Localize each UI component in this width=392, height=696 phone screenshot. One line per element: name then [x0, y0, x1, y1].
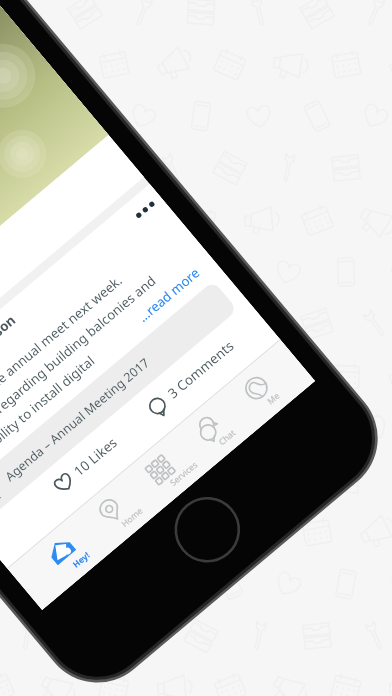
button[interactable] [0, 0, 392, 696]
